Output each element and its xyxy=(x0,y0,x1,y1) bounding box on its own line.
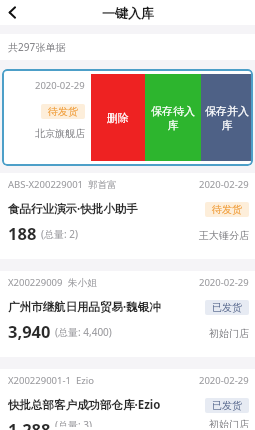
staticText: X200229009 xyxy=(8,276,63,289)
staticText: 北京旗舰店 xyxy=(35,127,85,140)
staticText: 共297张单据 xyxy=(8,40,66,54)
staticText: 朱小姐 xyxy=(68,277,97,289)
staticText: 郭首富 xyxy=(88,179,117,191)
staticText: 食品行业演示·快批小助手 xyxy=(8,201,138,217)
button[interactable]: ABS-X200229001 xyxy=(0,173,255,259)
staticText: (总量: 3) xyxy=(55,418,92,427)
staticText: 2020-02-29 xyxy=(35,79,85,92)
staticText: ABS-X200229001 xyxy=(8,178,83,191)
staticText: 1,288 xyxy=(8,418,51,430)
staticText: 初始门店 xyxy=(209,327,249,340)
staticText: 快批总部客户成功部仓库·Ezio xyxy=(8,397,161,413)
button[interactable]: 2020-02-29 xyxy=(2,74,91,161)
staticText: 待发货 xyxy=(212,203,242,216)
button[interactable]: 待发货 xyxy=(205,202,249,217)
staticText: 2020-02-29 xyxy=(199,374,249,387)
staticText: 广州市继航日用品贸易·魏银冲 xyxy=(8,299,161,315)
button[interactable]: X200229009 xyxy=(0,271,255,357)
staticText: 初始门店 xyxy=(209,418,249,428)
staticText: 已发货 xyxy=(212,301,242,314)
staticText: X200229001-1 xyxy=(8,374,71,387)
button[interactable]: X200229001-1 xyxy=(0,369,255,430)
staticText: Ezio xyxy=(76,374,94,387)
button[interactable]: 已发货 xyxy=(205,300,249,315)
staticText: (总量: 4,400) xyxy=(55,325,112,339)
staticText: 188 xyxy=(8,222,37,244)
staticText: 保存待入库 xyxy=(148,104,198,132)
staticText: 2020-02-29 xyxy=(199,276,249,289)
staticText: 待发货 xyxy=(48,105,78,118)
button[interactable]: 删除 xyxy=(91,74,145,161)
staticText: 已发货 xyxy=(212,399,242,412)
staticText: (总量: 2) xyxy=(41,227,78,241)
staticText: 一键入库 xyxy=(102,5,154,21)
staticText: 保存并入库 xyxy=(203,104,251,132)
staticText: 3,940 xyxy=(8,320,51,342)
staticText: 删除 xyxy=(107,111,129,125)
staticText: 王大锤分店 xyxy=(199,229,249,242)
staticText: 2020-02-29 xyxy=(199,178,249,191)
button[interactable]: Back xyxy=(0,0,25,25)
button[interactable]: 待发货 xyxy=(41,104,85,119)
button[interactable]: 已发货 xyxy=(205,398,249,413)
button[interactable]: 保存并入库 xyxy=(201,74,253,161)
button[interactable]: 保存待入库 xyxy=(145,74,201,161)
